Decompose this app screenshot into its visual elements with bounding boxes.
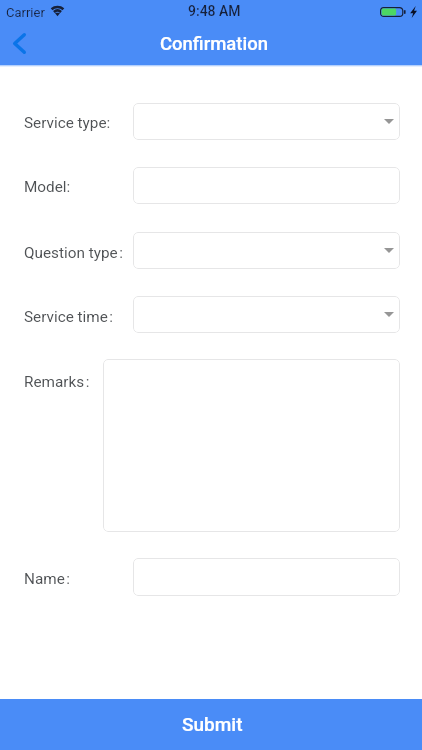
- staticText: Service type:: [24, 114, 111, 132]
- staticText: Name :: [24, 570, 71, 588]
- button[interactable]: Model: [133, 167, 400, 204]
- button[interactable]: Back: [0, 26, 44, 65]
- staticText: Remarks :: [24, 373, 90, 391]
- button[interactable]: Remarks: [103, 359, 400, 532]
- staticText: Carrier: [6, 5, 45, 20]
- staticText: Submit: [182, 713, 243, 735]
- button[interactable]: Submit: [0, 699, 422, 750]
- button[interactable]: Service time: [133, 296, 400, 333]
- staticText: 9:48 AM: [188, 3, 241, 19]
- staticText: Service time :: [24, 308, 114, 326]
- staticText: Model:: [24, 178, 71, 196]
- button[interactable]: Name: [133, 558, 400, 596]
- button[interactable]: Question type: [133, 232, 400, 269]
- staticText: Confirmation: [160, 33, 268, 55]
- button[interactable]: Service type: [133, 103, 400, 140]
- staticText: Question type :: [24, 244, 123, 262]
